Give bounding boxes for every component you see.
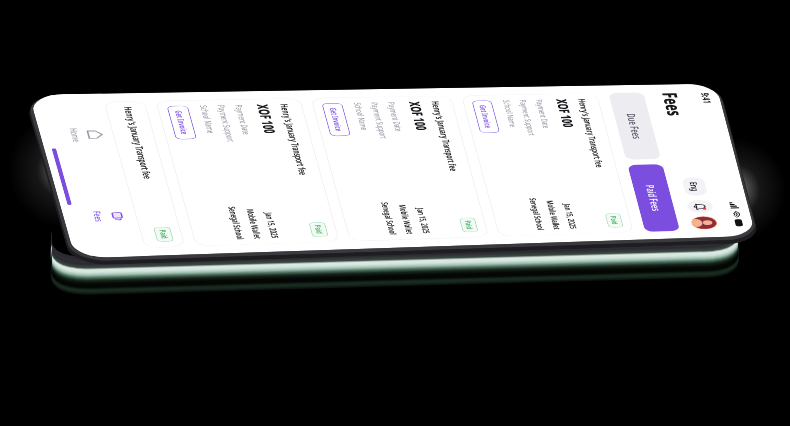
staticText: XOF 100 [551, 98, 580, 129]
staticText: Mobile Wallet [542, 200, 565, 230]
staticText: Jan 15, 2025 [560, 203, 581, 230]
staticText: XOF 100 [113, 107, 126, 137]
staticText: Payment Date [231, 104, 254, 135]
staticText: Henry's January Transport fee [424, 100, 464, 172]
staticText: Mobile Wallet [242, 208, 266, 240]
staticText: 9:41 [697, 92, 715, 104]
staticText: Payment Support [366, 101, 392, 139]
staticText: Payment Date [384, 101, 407, 132]
staticText: Fees [655, 91, 691, 118]
staticText: School Name [196, 104, 219, 134]
staticText: Paid [462, 220, 476, 230]
staticText: XOF 100 [251, 103, 282, 135]
staticText: Paid Fees [641, 184, 666, 212]
button[interactable]: Get Invoice [320, 102, 353, 138]
staticText: Paid [311, 224, 326, 235]
staticText: Payment Date [532, 99, 554, 129]
button[interactable]: Henry's January Transport fee [96, 98, 193, 251]
staticText: Fees [90, 210, 107, 223]
button[interactable]: Eng [680, 176, 709, 197]
staticText: Senegal School [224, 206, 249, 240]
staticText: Henry's January Transport fee [273, 103, 314, 176]
button[interactable]: Fees [68, 172, 151, 261]
button[interactable]: Get Invoice [470, 99, 502, 134]
button[interactable]: Get Invoice [165, 104, 199, 141]
button[interactable]: Due Fees [605, 90, 664, 162]
staticText: Jan 15, 2025 [413, 207, 434, 234]
staticText: Paid [607, 215, 621, 225]
button[interactable]: Henry's January Transport fee [453, 84, 641, 245]
staticText: XOF 100 [403, 100, 433, 132]
staticText: Due Fees [622, 112, 646, 140]
button[interactable]: Paid Fees [624, 162, 684, 234]
button[interactable]: Henry's January Transport fee [147, 89, 347, 255]
staticText: Paid [156, 229, 171, 240]
staticText: Senegal School [525, 197, 548, 231]
staticText: Get Invoice [171, 110, 193, 135]
staticText: Home [66, 127, 85, 143]
staticText: Payment Support [213, 104, 239, 143]
staticText: Get Invoice [326, 107, 347, 132]
staticText: School Name [350, 102, 372, 131]
staticText: Senegal School [377, 201, 401, 236]
button[interactable]: Henry's January Transport fee [303, 86, 496, 250]
staticText: Get Invoice [476, 104, 496, 129]
staticText: Henry's January Transport fee [116, 106, 159, 180]
staticText: Henry's January Transport fee [571, 98, 610, 168]
staticText: Mobile Wallet [395, 204, 418, 235]
button[interactable]: Profile [689, 214, 719, 231]
button[interactable]: Home [45, 90, 128, 179]
staticText: School Name [499, 99, 521, 128]
staticText: Payment Support [515, 99, 540, 136]
staticText: Jan 15, 2025 [261, 211, 283, 239]
button[interactable]: Notifications [685, 198, 715, 215]
staticText: Eng [687, 181, 703, 192]
